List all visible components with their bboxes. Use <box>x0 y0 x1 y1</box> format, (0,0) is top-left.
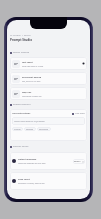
staticText: Document upload <box>22 76 42 79</box>
button[interactable]: Web URL <box>10 87 87 100</box>
staticText: Select the language for your deck <box>18 162 46 164</box>
button[interactable]: Document upload <box>10 72 87 85</box>
staticText: PDF, DOCX or TXT files <box>22 80 41 82</box>
staticText: English <box>74 160 81 163</box>
staticText: AI STUDIO / DECKS <box>10 34 31 37</box>
button[interactable]: Persuasive <box>37 127 51 131</box>
staticText: PROMPT DETAILS <box>13 103 31 106</box>
staticText: Prompt Studio <box>10 38 33 42</box>
staticText: Estimated 12 slides, about 6 min <box>18 182 45 184</box>
staticText: Output language <box>18 158 37 161</box>
staticText: Your instructions <box>12 112 31 115</box>
staticText: Web URL <box>22 91 32 94</box>
staticText: Paste raw notes or a draft <box>22 65 44 67</box>
button[interactable]: Text input <box>10 57 87 70</box>
button[interactable]: English <box>73 159 85 164</box>
button[interactable]: Detailed <box>24 127 36 131</box>
staticText: Summarize a public link <box>22 95 42 97</box>
staticText: Persuasive <box>39 128 49 130</box>
button[interactable]: Output language <box>10 152 87 170</box>
staticText: Concise <box>14 128 21 130</box>
button[interactable]: Slide count <box>10 172 87 190</box>
staticText: Detailed <box>26 128 34 130</box>
button[interactable]: Concise <box>12 127 23 131</box>
staticText: Text input <box>22 61 33 64</box>
staticText: Auto assist <box>75 112 85 115</box>
staticText: Write a short deck for a Q3 update <box>14 120 45 123</box>
staticText: SELECT SOURCE <box>13 51 30 54</box>
staticText: Slide count <box>18 178 30 181</box>
button[interactable]: Write a short deck for a Q3 update <box>12 117 85 125</box>
staticText: OUTPUT SETUP <box>13 145 29 148</box>
other: Favorite <box>82 62 85 65</box>
